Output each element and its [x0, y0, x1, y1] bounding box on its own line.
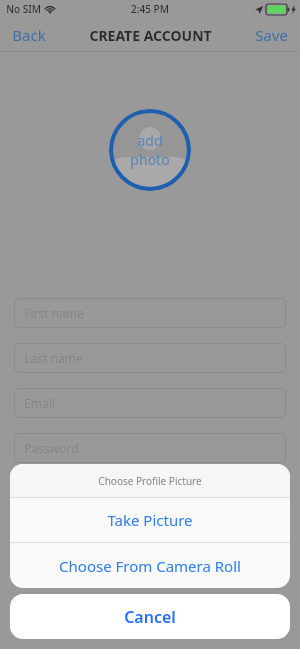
button[interactable]: Back: [0, 18, 58, 52]
button[interactable]: Take Picture: [10, 498, 290, 542]
button[interactable]: First name: [14, 298, 286, 328]
staticText: add: [137, 131, 163, 150]
staticText: First name: [24, 305, 84, 321]
button[interactable]: Choose From Camera Roll: [10, 543, 290, 588]
button[interactable]: Save: [243, 18, 300, 52]
button[interactable]: Cancel: [10, 594, 290, 639]
staticText: Save: [255, 25, 288, 45]
staticText: Last name: [24, 350, 83, 366]
staticText: Choose Profile Picture: [98, 474, 202, 488]
staticText: No SIM: [6, 2, 41, 16]
button[interactable]: Last name: [14, 343, 286, 373]
button[interactable]: Add photo: [109, 109, 191, 191]
staticText: 2:45 PM: [131, 2, 169, 16]
staticText: Choose From Camera Roll: [59, 556, 241, 576]
staticText: Back: [12, 25, 46, 45]
button[interactable]: Email: [14, 388, 286, 418]
staticText: photo: [130, 150, 170, 169]
staticText: Email: [24, 395, 55, 411]
staticText: CREATE ACCOUNT: [89, 26, 212, 45]
staticText: Cancel: [124, 606, 176, 628]
staticText: Take Picture: [107, 510, 193, 530]
button[interactable]: Password: [14, 433, 286, 463]
staticText: Password: [24, 440, 79, 456]
